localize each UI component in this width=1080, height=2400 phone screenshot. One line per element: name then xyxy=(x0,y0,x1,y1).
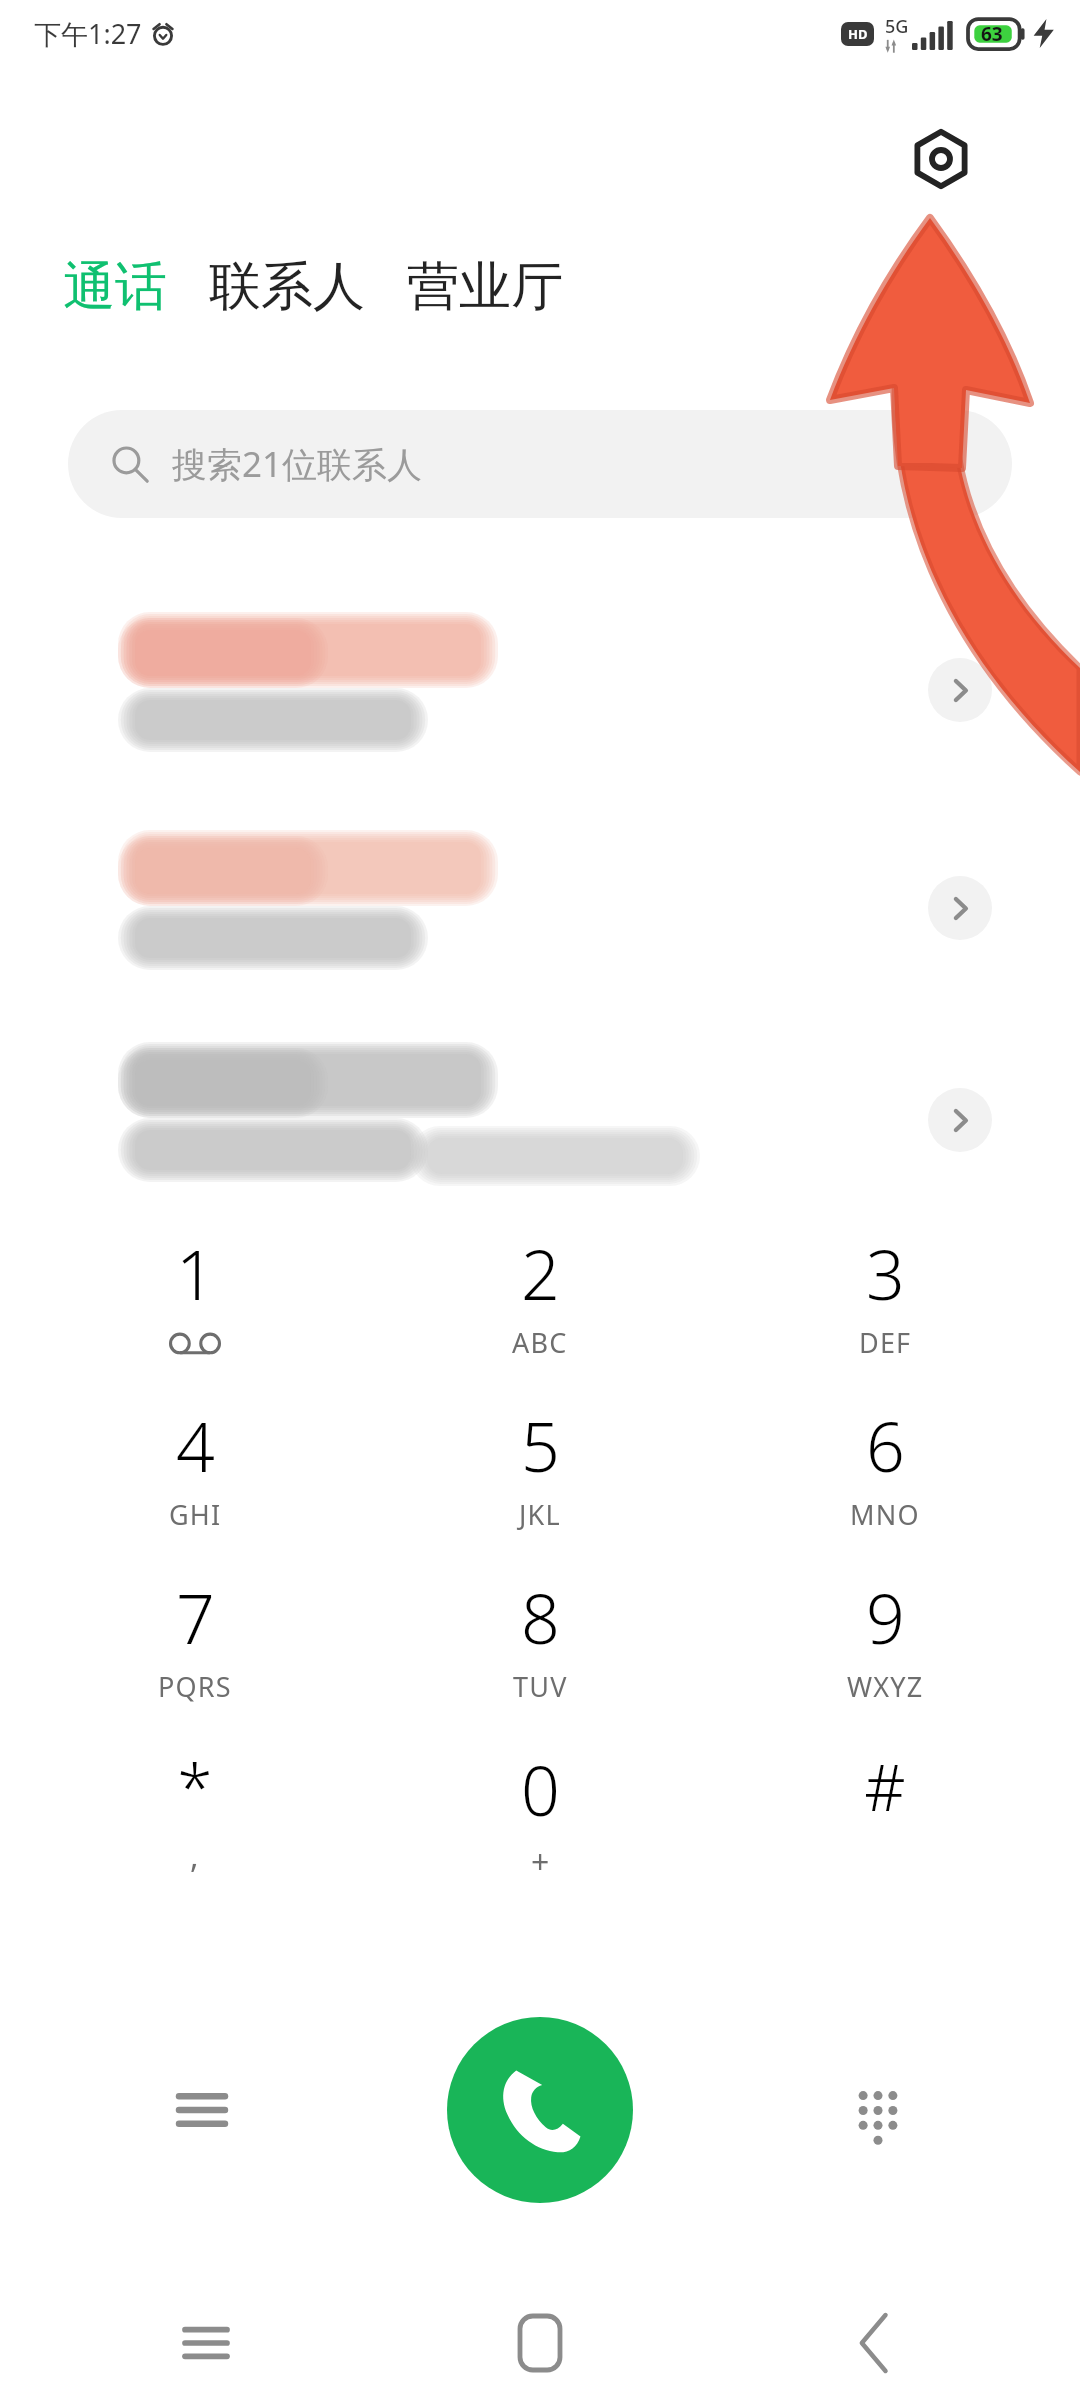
button[interactable]: Home xyxy=(494,2297,586,2389)
button[interactable]: 5 xyxy=(390,1399,690,1567)
button[interactable]: Dialpad xyxy=(828,2060,928,2160)
button[interactable]: 通话 xyxy=(58,246,172,328)
staticText: 5G xyxy=(885,14,909,39)
staticText: ABC xyxy=(512,1324,568,1361)
button[interactable]: Call log xyxy=(152,2060,252,2160)
button[interactable]: Recents xyxy=(160,2297,252,2389)
staticText: 1 xyxy=(176,1227,215,1320)
button[interactable]: * xyxy=(45,1743,345,1911)
button[interactable]: 搜索21位联系人 xyxy=(68,410,1012,518)
button[interactable]: 营业厅 xyxy=(402,246,568,328)
staticText: 3 xyxy=(866,1227,905,1320)
staticText: 5 xyxy=(521,1399,560,1492)
staticText: 搜索21位联系人 xyxy=(172,440,423,488)
button[interactable]: Open contact xyxy=(928,1088,992,1152)
staticText: MNO xyxy=(850,1496,920,1533)
staticText: TUV xyxy=(513,1668,568,1705)
button[interactable]: 6 xyxy=(735,1399,1035,1567)
staticText: 营业厅 xyxy=(407,254,563,320)
button[interactable]: 3 xyxy=(735,1227,1035,1395)
button[interactable]: # xyxy=(735,1743,1035,1911)
button[interactable]: 4 xyxy=(45,1399,345,1567)
button[interactable]: Open contact xyxy=(928,658,992,722)
button[interactable]: 7 xyxy=(45,1571,345,1739)
staticText: 联系人 xyxy=(209,254,365,320)
button[interactable]: Back xyxy=(828,2297,920,2389)
button[interactable]: Open contact xyxy=(0,828,1080,1018)
staticText: GHI xyxy=(169,1496,222,1533)
button[interactable]: 联系人 xyxy=(204,246,370,328)
staticText: # xyxy=(864,1743,906,1830)
button[interactable]: Call xyxy=(447,2017,633,2203)
staticText: , xyxy=(190,1834,200,1878)
staticText: 9 xyxy=(866,1571,905,1664)
button[interactable]: Settings xyxy=(898,116,984,202)
button[interactable]: 8 xyxy=(390,1571,690,1739)
button[interactable]: 2 xyxy=(390,1227,690,1395)
button[interactable]: Open contact xyxy=(0,610,1080,800)
staticText: 下午1:27 xyxy=(34,15,142,52)
button[interactable]: 1 xyxy=(45,1227,345,1395)
staticText: 2 xyxy=(521,1227,560,1320)
staticText: * xyxy=(177,1743,213,1830)
staticText: 7 xyxy=(176,1571,215,1664)
staticText: JKL xyxy=(519,1496,561,1533)
staticText: + xyxy=(531,1840,551,1884)
staticText: DEF xyxy=(859,1324,912,1361)
staticText: 63 xyxy=(981,21,1003,47)
staticText: WXYZ xyxy=(847,1668,924,1705)
button[interactable]: Open contact xyxy=(928,876,992,940)
button[interactable]: 0 xyxy=(390,1743,690,1911)
staticText: PQRS xyxy=(158,1668,232,1705)
button[interactable]: Open contact xyxy=(0,1040,1080,1230)
staticText: 8 xyxy=(521,1571,560,1664)
staticText: HD xyxy=(848,25,868,43)
button[interactable]: 9 xyxy=(735,1571,1035,1739)
staticText: 通话 xyxy=(63,254,167,320)
staticText: 4 xyxy=(176,1399,215,1492)
staticText: 6 xyxy=(866,1399,905,1492)
staticText: 0 xyxy=(521,1743,560,1836)
